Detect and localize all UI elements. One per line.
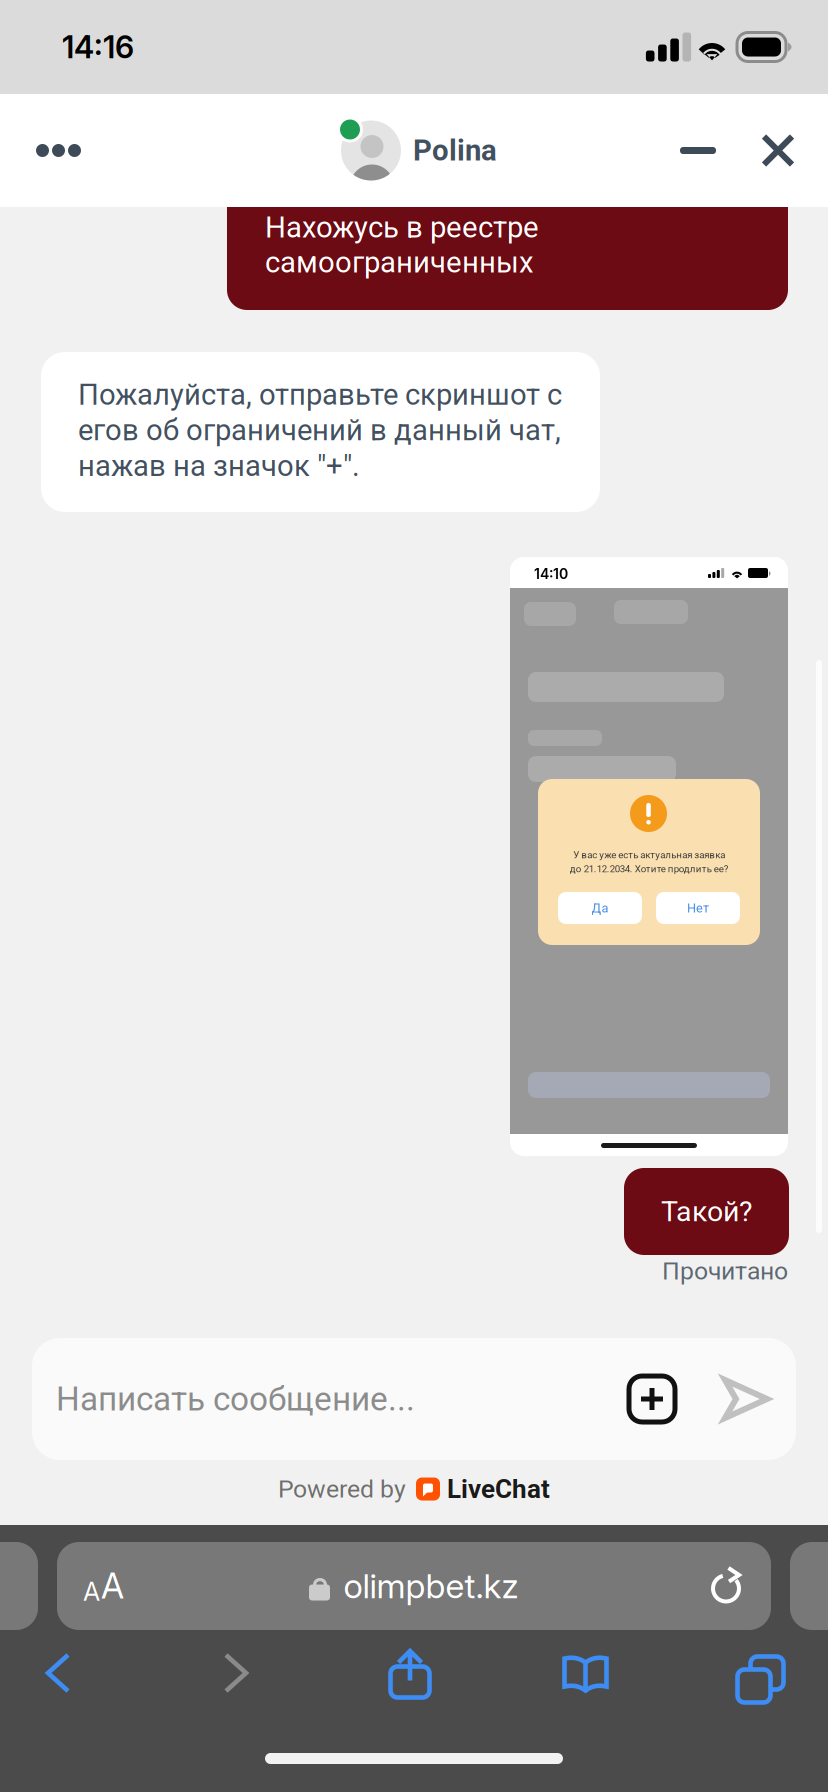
button[interactable]: Bookmarks xyxy=(527,1631,647,1715)
staticText: Пожалуйста, отправьте скриншот с егов об… xyxy=(78,377,562,484)
button[interactable]: Send message xyxy=(700,1338,792,1460)
button[interactable]: Close chat xyxy=(728,94,828,207)
button[interactable]: Да xyxy=(558,892,642,924)
staticText: A xyxy=(83,1576,100,1607)
staticText: У вас уже есть актуальная заявка до 21.1… xyxy=(569,848,728,876)
staticText: Прочитано xyxy=(662,1256,788,1286)
button[interactable]: Share xyxy=(350,1631,470,1715)
staticText: 14:16 xyxy=(62,28,134,65)
staticText: 14:10 xyxy=(534,565,568,582)
staticText: Polina xyxy=(413,133,497,168)
button[interactable]: Address, olimpbet.kz xyxy=(57,1542,771,1630)
staticText: Такой? xyxy=(661,1195,752,1228)
button[interactable]: Forward xyxy=(176,1631,296,1715)
staticText: Нахожусь в реестре самоограниченных xyxy=(265,210,539,280)
button[interactable]: Back xyxy=(0,1631,118,1715)
button[interactable]: Tabs xyxy=(694,1631,814,1715)
staticText: Да xyxy=(591,900,608,915)
staticText: Нет xyxy=(687,900,709,915)
button[interactable]: Нет xyxy=(656,892,740,924)
staticText: LiveChat xyxy=(447,1474,550,1504)
button[interactable]: More options xyxy=(0,94,117,207)
staticText: Powered by xyxy=(278,1474,406,1504)
button[interactable]: Attach file xyxy=(612,1338,692,1460)
staticText: A xyxy=(101,1565,124,1607)
staticText: Написать сообщение... xyxy=(56,1379,415,1419)
button[interactable]: Minimize chat xyxy=(648,94,748,207)
staticText: olimpbet.kz xyxy=(343,1565,518,1606)
